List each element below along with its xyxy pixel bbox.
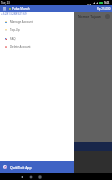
staticText: +6281328892169 xyxy=(1,12,27,16)
staticText: Top-Up xyxy=(10,28,20,32)
button[interactable]: FAQ xyxy=(0,34,74,43)
staticText: Quit/Exit App xyxy=(10,165,32,170)
button[interactable]: Open navigation drawer xyxy=(1,5,8,12)
staticText: Delete Account xyxy=(10,45,31,49)
button[interactable]: Back xyxy=(20,175,24,179)
staticText: Nomor Tujuan xyxy=(78,14,101,19)
staticText: Tue, 23 xyxy=(1,1,10,5)
button[interactable]: Home xyxy=(29,175,33,179)
staticText: FAQ xyxy=(10,37,16,41)
button[interactable]: Close navigation drawer xyxy=(0,12,112,173)
button[interactable]: Delete Account xyxy=(0,42,74,51)
button[interactable]: Top-Up xyxy=(0,25,74,34)
button[interactable]: Manage Account xyxy=(0,17,74,26)
staticText: LTE xyxy=(87,2,92,5)
button[interactable]: Quit/Exit App xyxy=(0,161,74,173)
staticText: Manage Account xyxy=(10,20,33,24)
button[interactable]: Recent apps xyxy=(38,175,42,179)
staticText: Pulsa Murah xyxy=(12,7,30,11)
staticText: Rp 25.000 xyxy=(97,7,111,11)
staticText: 9:43 xyxy=(104,1,110,5)
